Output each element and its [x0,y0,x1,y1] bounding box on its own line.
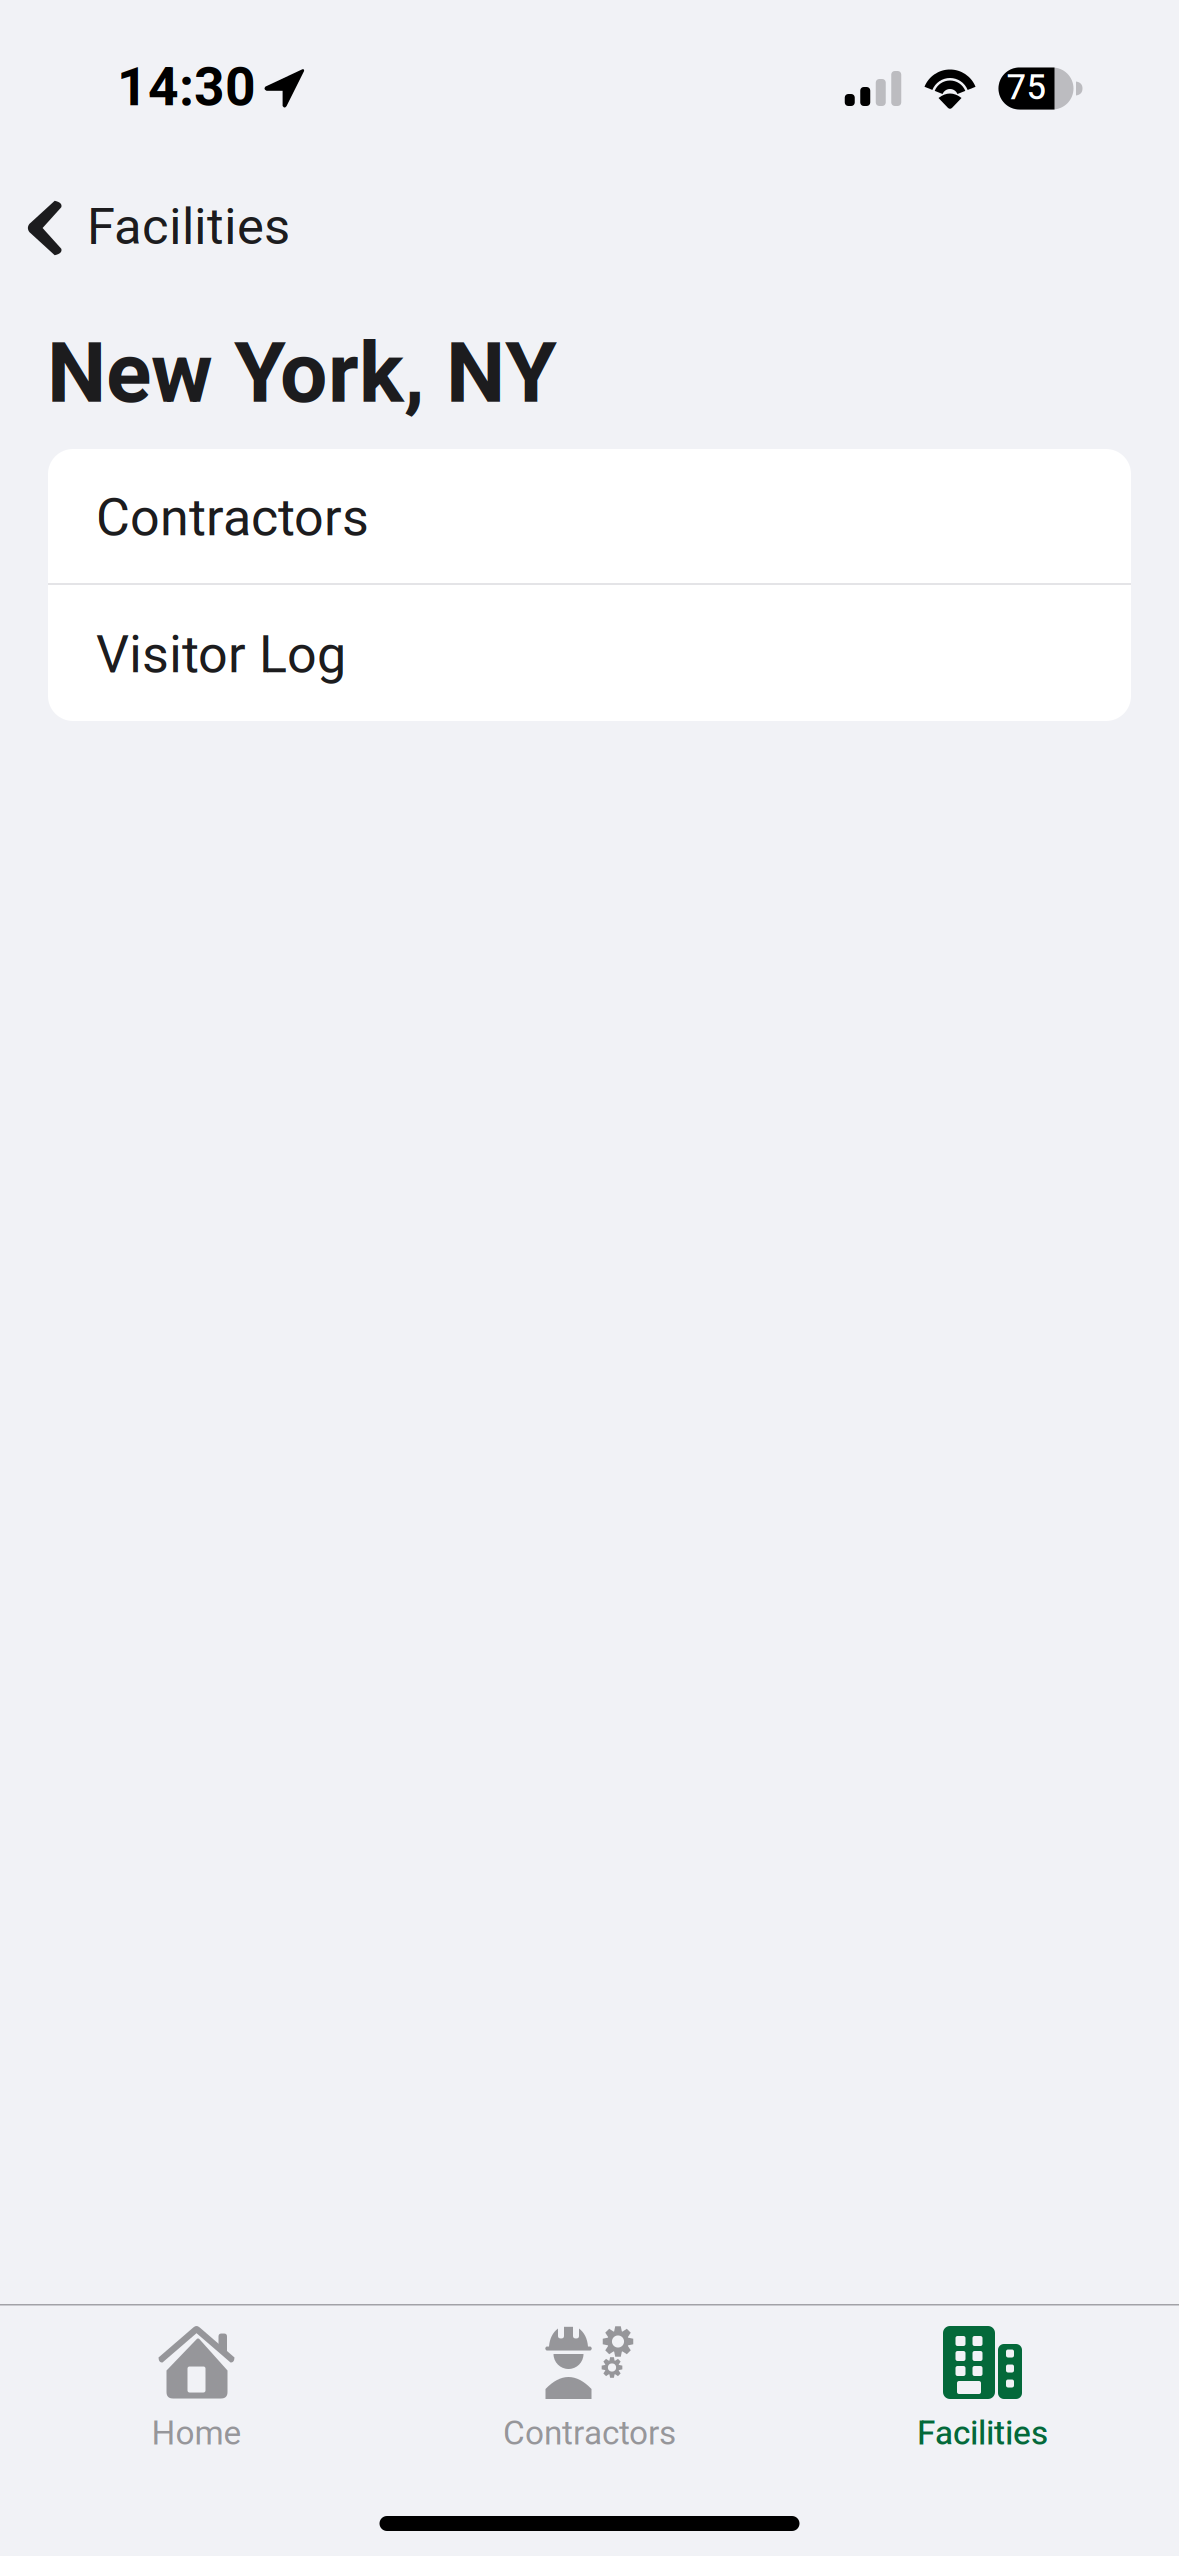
staticText: 14:30 [117,49,256,128]
button[interactable]: Contractors [48,449,1131,583]
button[interactable]: Facilities [0,174,290,280]
staticText: 75 [1006,63,1046,114]
staticText: Visitor Log [96,618,346,694]
staticText: Contractors [503,2409,676,2458]
button[interactable]: Visitor Log [48,585,1131,721]
button[interactable]: Contractors [393,2305,786,2485]
staticText: New York, NY [47,314,557,437]
staticText: Facilities [917,2409,1048,2458]
staticText: Home [151,2409,241,2458]
button[interactable]: Home [0,2305,393,2485]
staticText: Facilities [87,191,290,265]
staticText: Contractors [96,481,369,557]
button[interactable]: Facilities [786,2305,1179,2485]
